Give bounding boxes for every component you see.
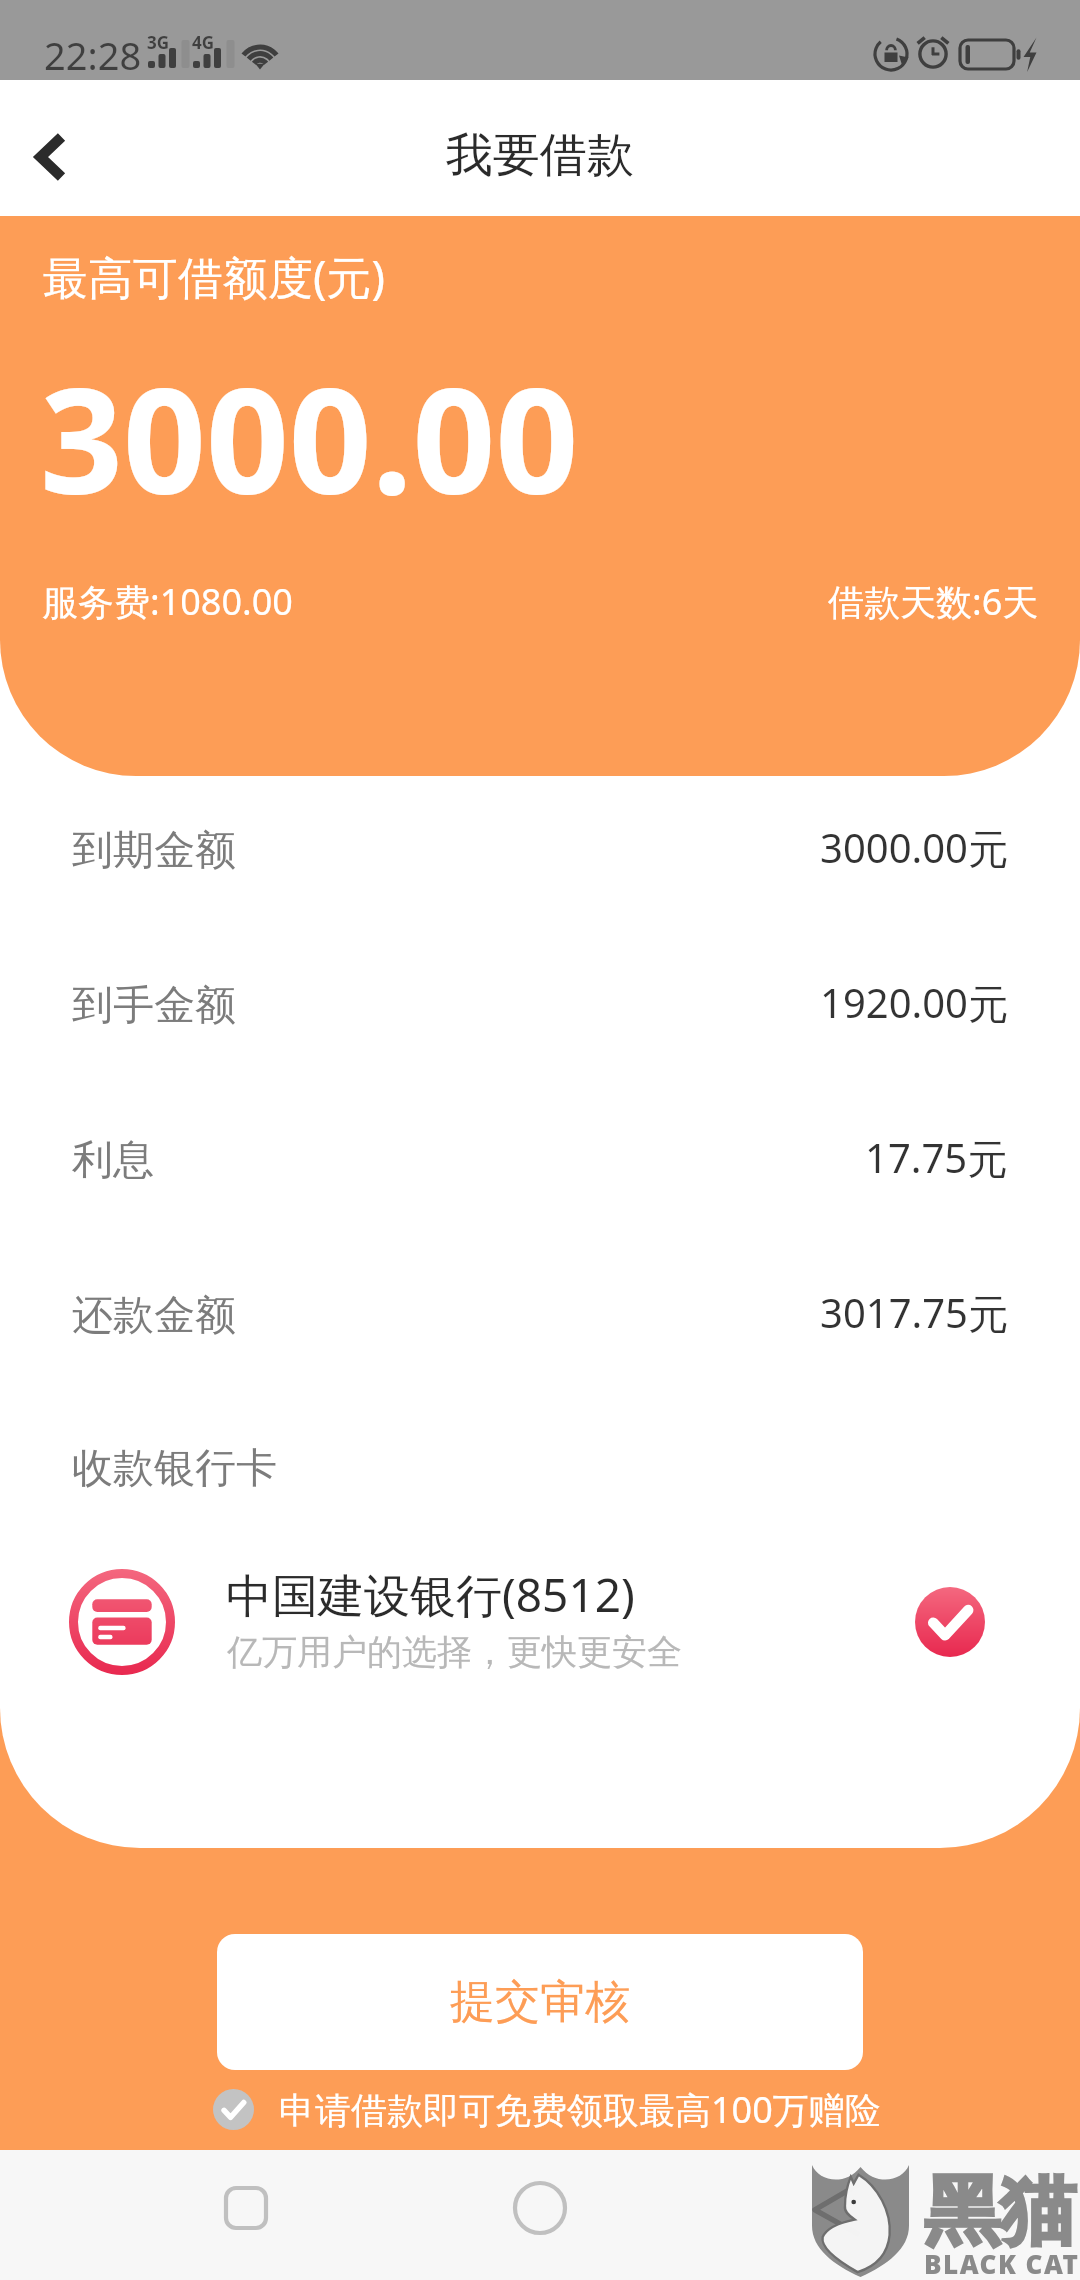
staticText: 服务费:1080.00 xyxy=(42,577,293,626)
staticText: 我要借款 xyxy=(446,126,634,185)
staticText: 22:28 xyxy=(44,29,142,81)
staticText: 借款天数:6天 xyxy=(828,577,1039,626)
staticText: 17.75元 xyxy=(865,1130,1008,1185)
staticText: 收款银行卡 xyxy=(72,1443,277,1495)
staticText: 还款金额 xyxy=(72,1290,236,1342)
staticText: 3017.75元 xyxy=(820,1285,1008,1340)
button[interactable]: Recents xyxy=(186,2148,306,2268)
staticText: 黑猫 xyxy=(924,2164,1076,2260)
staticText: 3G xyxy=(147,31,170,54)
staticText: BLACK CAT xyxy=(924,2246,1080,2280)
staticText: 到手金额 xyxy=(72,980,236,1032)
staticText: 申请借款即可免费领取最高100万赠险 xyxy=(279,2085,881,2134)
staticText: 1920.00元 xyxy=(820,975,1008,1030)
staticText: 提交审核 xyxy=(450,1974,630,2031)
button[interactable]: 申请借款即可免费领取最高100万赠险 xyxy=(7,2085,1080,2134)
staticText: 4G xyxy=(192,31,215,54)
button[interactable]: Home xyxy=(480,2148,600,2268)
button[interactable]: 还款金额 xyxy=(0,1241,1080,1396)
staticText: 中国建设银行(8512) xyxy=(226,1563,635,1626)
button[interactable]: 到手金额 xyxy=(0,931,1080,1086)
button[interactable]: 利息 xyxy=(0,1086,1080,1241)
staticText: 最高可借额度(元) xyxy=(43,246,386,307)
button[interactable]: 中国建设银行(8512) xyxy=(0,1542,1080,1702)
button[interactable]: Back xyxy=(0,80,118,216)
staticText: 3000.00 xyxy=(40,339,579,536)
button[interactable]: Selected bank card xyxy=(915,1587,985,1657)
staticText: 亿万用户的选择，更快更安全 xyxy=(227,1630,682,1674)
button[interactable]: 提交审核 xyxy=(217,1934,863,2070)
staticText: 3000.00元 xyxy=(820,820,1008,875)
button[interactable]: 到期金额 xyxy=(0,776,1080,931)
staticText: 到期金额 xyxy=(72,825,236,877)
staticText: 利息 xyxy=(72,1135,154,1187)
